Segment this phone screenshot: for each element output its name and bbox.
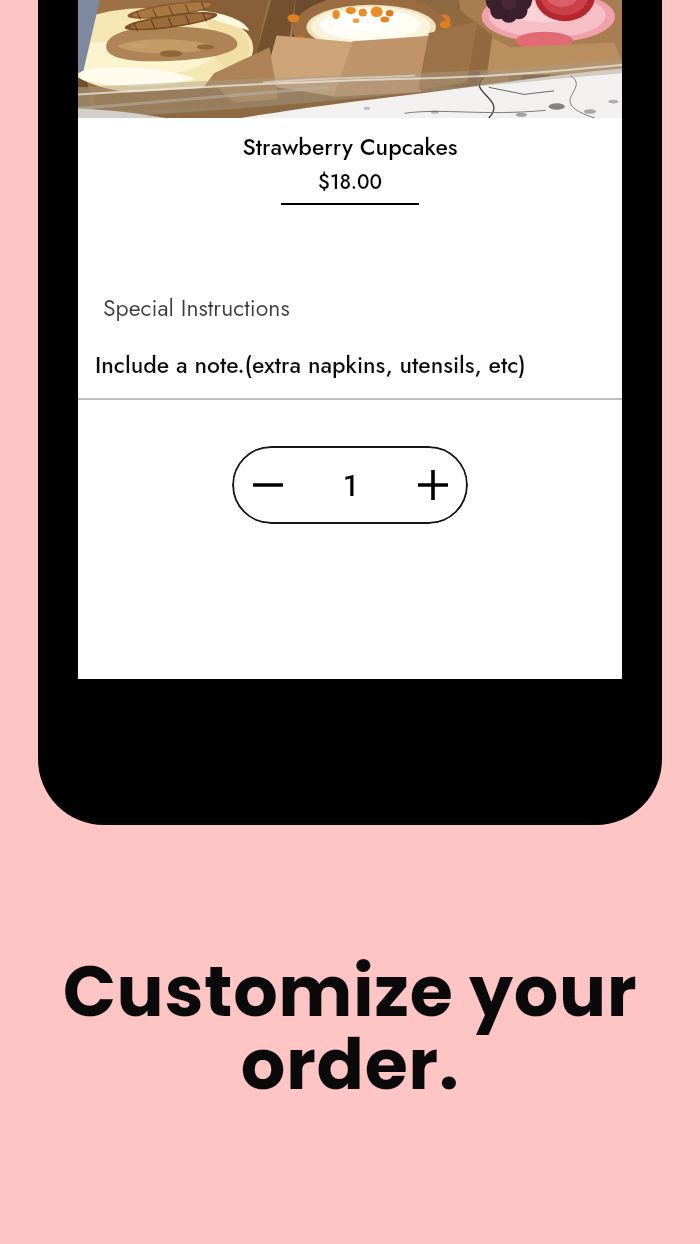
button[interactable]: Decrease quantity — [245, 462, 291, 508]
button[interactable]: Include a note.(extra napkins, utensils,… — [78, 340, 622, 400]
staticText: Special Instructions — [103, 291, 290, 324]
staticText: $18.00 — [78, 168, 622, 197]
staticText: Customize your order. — [0, 942, 700, 1114]
button[interactable]: Increase quantity — [410, 462, 456, 508]
staticText: 1 — [343, 464, 358, 507]
staticText: Include a note.(extra napkins, utensils,… — [95, 348, 526, 381]
staticText: Strawberry Cupcakes — [78, 130, 622, 163]
